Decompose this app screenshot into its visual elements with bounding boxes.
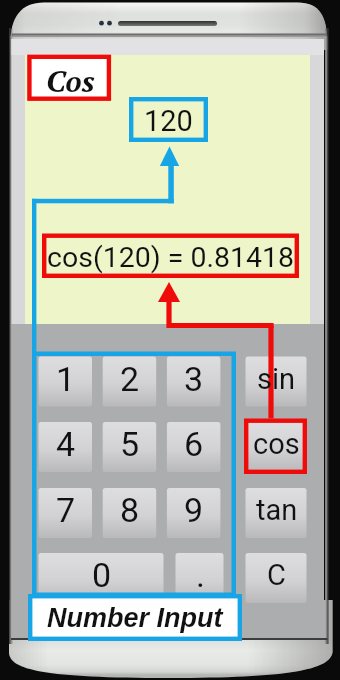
staticText: 8	[120, 490, 140, 530]
staticText: 6	[184, 424, 204, 464]
staticText: 4	[56, 424, 76, 464]
button[interactable]: .	[176, 553, 224, 603]
staticText: .	[196, 555, 205, 595]
staticText: cos	[253, 427, 300, 461]
button[interactable]: 5	[103, 422, 157, 472]
staticText: Number Input	[47, 603, 223, 633]
button[interactable]: C	[246, 553, 307, 603]
button[interactable]: 7	[39, 488, 93, 538]
button[interactable]: 3	[167, 357, 221, 407]
button[interactable]: cos	[246, 422, 307, 472]
staticText: tan	[256, 493, 298, 527]
staticText: cos(120) = 0.81418	[47, 241, 295, 274]
button[interactable]: 0	[39, 553, 164, 603]
button[interactable]: 8	[103, 488, 157, 538]
staticText: 3	[184, 359, 204, 399]
button[interactable]: 6	[167, 422, 221, 472]
staticText: sin	[257, 362, 296, 396]
button[interactable]: 4	[39, 422, 93, 472]
button[interactable]: 9	[167, 488, 221, 538]
button[interactable]: sin	[246, 357, 307, 407]
staticText: 5	[120, 424, 140, 464]
button[interactable]: 2	[103, 357, 157, 407]
staticText: C	[267, 558, 286, 592]
button[interactable]: 1	[39, 357, 93, 407]
staticText: Cos	[46, 61, 95, 101]
staticText: 9	[184, 490, 204, 530]
button[interactable]: tan	[246, 488, 307, 538]
staticText: 1	[56, 359, 76, 399]
staticText: 7	[56, 490, 76, 530]
staticText: 0	[92, 555, 112, 595]
staticText: 120	[144, 104, 193, 138]
staticText: 2	[120, 359, 140, 399]
